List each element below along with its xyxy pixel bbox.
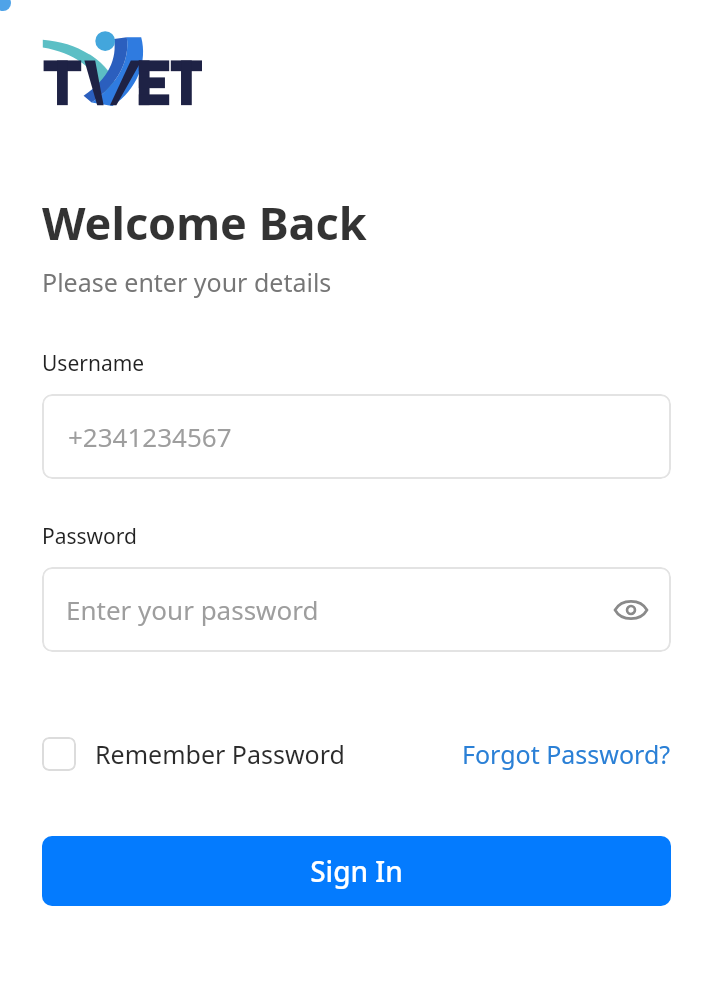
staticText: Username [42, 349, 145, 378]
staticText: Forgot Password? [462, 737, 671, 771]
staticText: +2341234567 [68, 419, 232, 454]
staticText: Sign In [310, 852, 403, 890]
button[interactable]: Sign In [42, 836, 671, 906]
button[interactable]: +2341234567 [42, 394, 671, 479]
staticText: Please enter your details [42, 265, 332, 299]
staticText: Password [42, 522, 137, 551]
staticText: Remember Password [95, 737, 345, 771]
staticText: Enter your password [66, 592, 609, 627]
button[interactable]: Enter your password [42, 567, 671, 652]
staticText: Welcome Back [42, 192, 367, 253]
button[interactable]: Forgot Password? [462, 737, 671, 771]
button[interactable]: Remember Password [42, 737, 345, 771]
button[interactable]: Show password [609, 588, 653, 632]
